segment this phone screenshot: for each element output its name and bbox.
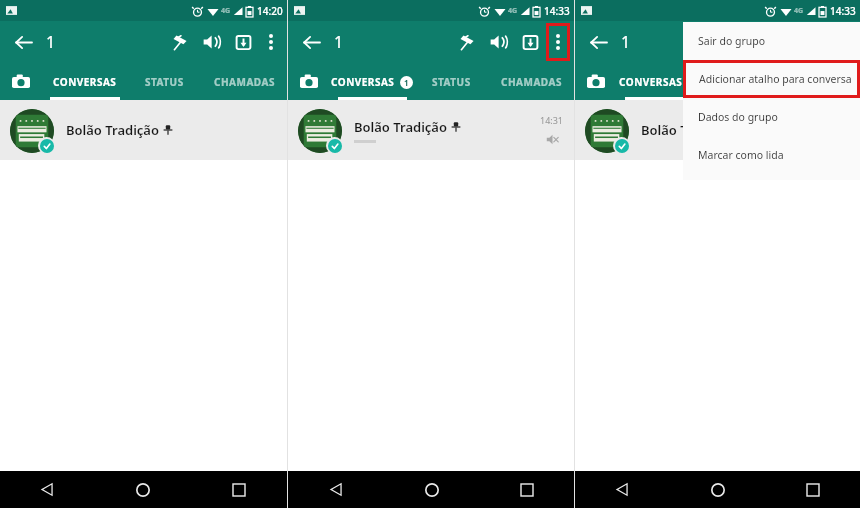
button[interactable]: Dados do grupo bbox=[683, 98, 860, 136]
button[interactable]: Back bbox=[288, 471, 384, 508]
staticText: CONVERSAS bbox=[331, 75, 395, 89]
button[interactable]: Adicionar atalho para conversa bbox=[686, 63, 857, 95]
staticText: CHAMADAS bbox=[788, 75, 849, 89]
staticText: STATUS bbox=[145, 75, 184, 89]
button[interactable]: Pin chat bbox=[736, 26, 768, 58]
button[interactable]: CHAMADAS bbox=[489, 63, 574, 100]
staticText: 4G bbox=[794, 6, 804, 16]
staticText: Bolão Tr bbox=[641, 121, 693, 139]
button[interactable]: More options bbox=[832, 23, 856, 61]
button[interactable]: CHAMADAS bbox=[776, 63, 860, 100]
staticText: Adicionar atalho para conversa bbox=[699, 72, 852, 86]
button[interactable]: Recent apps bbox=[479, 471, 574, 508]
staticText: 4G bbox=[221, 6, 231, 16]
staticText: Marcar como lida bbox=[698, 148, 784, 162]
button[interactable]: Pin chat bbox=[163, 26, 195, 58]
button[interactable]: Home bbox=[95, 471, 191, 508]
staticText: Dados do grupo bbox=[698, 110, 778, 124]
button[interactable]: STATUS bbox=[702, 63, 776, 100]
staticText: CHAMADAS bbox=[214, 75, 275, 89]
button[interactable]: CONVERSAS bbox=[617, 63, 702, 100]
staticText: 1 bbox=[404, 77, 409, 88]
button[interactable]: CONVERSAS bbox=[330, 63, 414, 100]
button[interactable]: Recent apps bbox=[765, 471, 860, 508]
staticText: CONVERSAS bbox=[53, 75, 117, 89]
staticText: 14:33 bbox=[544, 4, 570, 18]
button[interactable]: More options bbox=[549, 26, 567, 58]
button[interactable]: CONVERSAS bbox=[42, 63, 127, 100]
button[interactable]: Bolão Tr bbox=[575, 100, 860, 160]
button[interactable]: Home bbox=[384, 471, 479, 508]
button[interactable]: Back bbox=[581, 25, 615, 59]
staticText: STATUS bbox=[432, 75, 471, 89]
staticText: 14:31 bbox=[540, 114, 564, 126]
staticText: 14:33 bbox=[830, 4, 856, 18]
button[interactable]: Marcar como lida bbox=[683, 136, 860, 174]
button[interactable]: Home bbox=[670, 471, 765, 508]
button[interactable]: Bolão Tradição bbox=[288, 100, 574, 160]
button[interactable]: Archive bbox=[227, 26, 259, 58]
button[interactable]: Sair do grupo bbox=[683, 22, 860, 60]
button[interactable]: Archive bbox=[514, 26, 546, 58]
button[interactable]: STATUS bbox=[127, 63, 202, 100]
button[interactable]: Bolão Tradição bbox=[0, 100, 287, 160]
button[interactable]: Mute bbox=[195, 26, 227, 58]
button[interactable]: Camera bbox=[575, 63, 617, 100]
staticText: 1 bbox=[334, 31, 344, 53]
button[interactable]: Pin chat bbox=[450, 26, 482, 58]
button[interactable]: Back bbox=[575, 471, 670, 508]
staticText: CHAMADAS bbox=[501, 75, 562, 89]
button[interactable]: Back bbox=[294, 25, 328, 59]
staticText: STATUS bbox=[720, 75, 759, 89]
button[interactable]: Back bbox=[6, 25, 40, 59]
button[interactable]: Back bbox=[0, 471, 95, 508]
staticText: 4G bbox=[508, 6, 518, 16]
button[interactable]: Recent apps bbox=[191, 471, 287, 508]
button[interactable]: CHAMADAS bbox=[202, 63, 287, 100]
staticText: CONVERSAS bbox=[619, 75, 683, 89]
staticText: 1 bbox=[621, 31, 631, 53]
button[interactable]: STATUS bbox=[414, 63, 489, 100]
button[interactable]: Camera bbox=[0, 63, 42, 100]
button[interactable]: More options bbox=[259, 23, 283, 61]
staticText: Bolão Tradição bbox=[66, 121, 159, 139]
staticText: Bolão Tradição bbox=[354, 118, 447, 136]
staticText: Sair do grupo bbox=[698, 34, 766, 48]
button[interactable]: Camera bbox=[288, 63, 330, 100]
button[interactable]: Mute bbox=[482, 26, 514, 58]
staticText: 1 bbox=[46, 31, 56, 53]
staticText: 14:20 bbox=[257, 4, 283, 18]
